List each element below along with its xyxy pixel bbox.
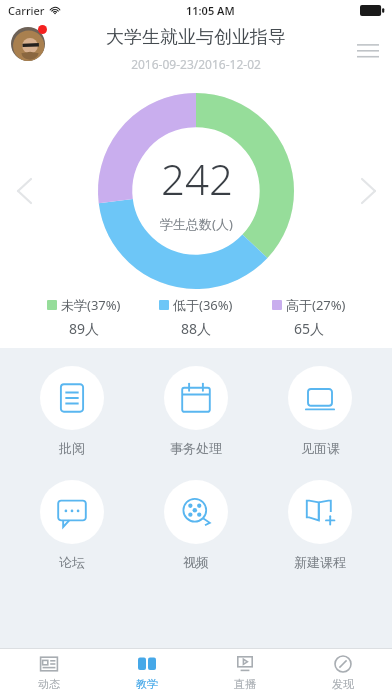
staticText: 学生总数(人) [160, 215, 233, 233]
staticText: 直播 [234, 677, 256, 691]
staticText: 事务处理 [170, 440, 222, 456]
button[interactable]: 事务处理 [144, 364, 248, 458]
staticText: 11:05 AM [186, 3, 235, 18]
staticText: 新建课程 [294, 554, 346, 570]
staticText: Carrier [8, 3, 45, 18]
button[interactable]: 论坛 [20, 478, 124, 572]
button[interactable]: Menu [344, 26, 392, 74]
staticText: 视频 [183, 554, 209, 570]
staticText: 见面课 [301, 440, 340, 456]
staticText: 高于(27%) [286, 296, 346, 314]
button[interactable]: 动态 [0, 649, 98, 696]
staticText: 低于(36%) [173, 296, 233, 314]
button[interactable]: 视频 [144, 478, 248, 572]
button[interactable]: 直播 [196, 649, 294, 696]
staticText: 89人 [69, 319, 100, 338]
staticText: 未学(37%) [61, 296, 121, 314]
button[interactable]: Next [350, 173, 386, 209]
button[interactable]: 批阅 [20, 364, 124, 458]
button[interactable]: 新建课程 [268, 478, 372, 572]
button[interactable]: 教学 [98, 649, 196, 696]
button[interactable]: Profile [8, 24, 48, 64]
staticText: 论坛 [59, 554, 85, 570]
button[interactable]: 发现 [294, 649, 392, 696]
staticText: 242 [161, 150, 233, 207]
button[interactable]: 见面课 [268, 364, 372, 458]
staticText: 88人 [181, 319, 212, 338]
staticText: 批阅 [59, 440, 85, 456]
staticText: 大学生就业与创业指导 [106, 26, 286, 49]
staticText: 2016-09-23/2016-12-02 [131, 56, 261, 72]
staticText: 65人 [294, 319, 325, 338]
staticText: 发现 [332, 677, 354, 691]
button[interactable]: Previous [6, 173, 42, 209]
staticText: 教学 [136, 677, 158, 691]
staticText: 动态 [38, 677, 60, 691]
